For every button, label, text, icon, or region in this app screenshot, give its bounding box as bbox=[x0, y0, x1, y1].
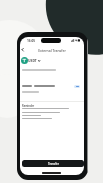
staticText: Transfer bbox=[48, 162, 59, 166]
staticText: 16:05 bbox=[27, 39, 36, 43]
button[interactable]: Transfer bbox=[22, 160, 84, 167]
staticText: USDT bbox=[28, 58, 37, 63]
staticText: External Transfer bbox=[20, 48, 84, 53]
button[interactable]: USDT bbox=[21, 57, 42, 64]
button[interactable] bbox=[20, 46, 27, 54]
button[interactable] bbox=[74, 85, 80, 88]
staticText: Reminder bbox=[22, 104, 35, 107]
